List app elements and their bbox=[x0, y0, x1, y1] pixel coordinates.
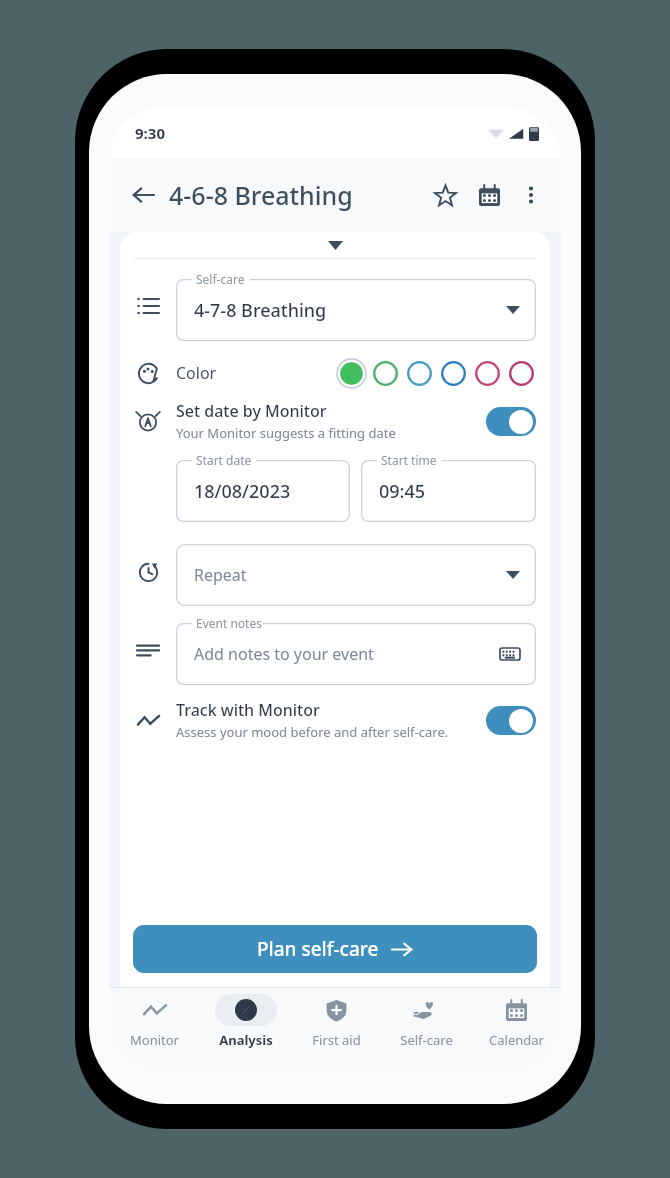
staticText: Add notes to your event bbox=[194, 643, 374, 665]
staticText: 09:45 bbox=[379, 479, 426, 504]
staticText: Set date by Monitor bbox=[176, 400, 327, 422]
staticText: Monitor bbox=[130, 1031, 179, 1049]
button[interactable]: More options bbox=[511, 175, 551, 215]
staticText: 18/08/2023 bbox=[194, 479, 291, 504]
staticText: Calendar bbox=[489, 1031, 544, 1049]
button[interactable]: Analysis bbox=[200, 994, 291, 1070]
button[interactable] bbox=[436, 356, 470, 390]
button[interactable]: Self-care bbox=[176, 271, 536, 341]
button[interactable]: Calendar bbox=[467, 173, 511, 217]
button[interactable] bbox=[402, 356, 436, 390]
button[interactable] bbox=[504, 356, 538, 390]
button[interactable]: Calendar bbox=[471, 994, 561, 1070]
staticText: First aid bbox=[312, 1031, 361, 1049]
staticText: 9:30 bbox=[135, 123, 165, 143]
button[interactable]: Toggle bbox=[486, 407, 536, 436]
staticText: 4-6-8 Breathing bbox=[169, 178, 353, 212]
staticText: Self-care bbox=[196, 271, 245, 287]
button[interactable]: Self-care bbox=[381, 994, 471, 1070]
button[interactable] bbox=[368, 356, 402, 390]
button[interactable]: Back bbox=[121, 173, 165, 217]
button[interactable] bbox=[334, 356, 368, 390]
staticText: Track with Monitor bbox=[176, 699, 320, 721]
staticText: Self-care bbox=[400, 1031, 453, 1049]
staticText: Start time bbox=[381, 452, 437, 468]
button[interactable]: Plan self-care bbox=[133, 925, 537, 973]
button[interactable]: Repeat bbox=[176, 536, 536, 606]
staticText: Start date bbox=[196, 452, 252, 468]
staticText: Your Monitor suggests a fitting date bbox=[176, 424, 396, 442]
button[interactable]: First aid bbox=[291, 994, 381, 1070]
button[interactable]: Toggle bbox=[486, 706, 536, 735]
staticText: Analysis bbox=[219, 1031, 273, 1049]
button[interactable]: Monitor bbox=[109, 994, 200, 1070]
button[interactable]: Start date bbox=[176, 452, 350, 522]
button[interactable]: Event notes bbox=[176, 615, 536, 685]
button[interactable]: Favorite bbox=[423, 173, 467, 217]
staticText: Event notes bbox=[196, 615, 262, 631]
staticText: Color bbox=[176, 362, 217, 384]
staticText: 4-7-8 Breathing bbox=[194, 298, 327, 323]
staticText: Plan self-care bbox=[257, 936, 379, 962]
staticText: Assess your mood before and after self-c… bbox=[176, 723, 449, 741]
staticText: Repeat bbox=[194, 564, 247, 586]
button[interactable] bbox=[470, 356, 504, 390]
button[interactable]: Start time bbox=[361, 452, 536, 522]
